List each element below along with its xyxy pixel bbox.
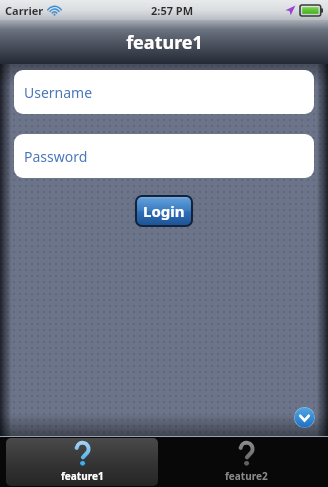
button[interactable]: Password — [14, 134, 314, 178]
staticText: feature1 — [126, 30, 203, 55]
staticText: feature1 — [61, 469, 104, 483]
button[interactable]: Username — [14, 70, 314, 114]
staticText: Carrier — [5, 3, 44, 18]
button[interactable]: Login — [137, 197, 191, 225]
staticText: 2:57 PM — [151, 3, 194, 18]
button[interactable]: Scroll down — [294, 407, 315, 428]
staticText: Password — [24, 147, 88, 166]
staticText: feature2 — [225, 469, 268, 483]
staticText: Login — [143, 201, 185, 221]
staticText: Username — [24, 83, 93, 102]
button[interactable]: feature1 — [6, 438, 158, 486]
button[interactable]: feature2 — [170, 438, 322, 486]
